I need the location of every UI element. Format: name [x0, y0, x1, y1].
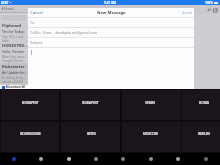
button[interactable]: Mail: [91, 154, 101, 164]
staticText: 9:41 AM: [104, 1, 117, 5]
staticText: An Update fro...: [2, 70, 28, 75]
staticText: To:: [30, 20, 35, 25]
button[interactable]: Compose: [212, 7, 218, 13]
staticText: BITES: [87, 132, 96, 136]
button[interactable]: BERLIN: [176, 131, 220, 137]
button[interactable]: [182, 90, 220, 120]
staticText: In many, brig...: [2, 75, 26, 79]
staticText: Top 10's + ind...: [2, 34, 26, 38]
staticText: Mountain Wi: [5, 85, 26, 89]
button[interactable]: HONESTRO...: [0, 42, 28, 63]
button[interactable]: Search: [173, 154, 183, 164]
button[interactable]: BUDAPEST: [2, 100, 58, 106]
staticText: Subject:: [30, 40, 43, 45]
button[interactable]: MOSCOW: [122, 131, 178, 137]
staticText: BERLIN: [198, 132, 210, 136]
button[interactable]: [61, 122, 120, 152]
staticText: Gmail: [4, 6, 14, 11]
button[interactable]: [1, 90, 59, 120]
button[interactable]: Photos: [36, 154, 46, 164]
staticText: SPAIN: [145, 101, 155, 105]
staticText: People Deem...: [2, 58, 26, 62]
button[interactable]: Flipboard: [0, 22, 28, 42]
staticText: BOURGOGNE: [20, 132, 41, 136]
button[interactable]: Clock: [118, 154, 128, 164]
staticText: ent-ut-u033el: [2, 79, 23, 83]
button[interactable]: ROMA: [176, 100, 220, 106]
button[interactable]: Safari: [9, 154, 19, 164]
button[interactable]: Music: [64, 154, 74, 164]
staticText: BUDAPEST: [82, 101, 99, 105]
button[interactable]: BOURGOGNE: [2, 131, 58, 137]
button[interactable]: BUDAPEST: [62, 100, 118, 106]
button[interactable]: [122, 90, 181, 120]
button[interactable]: [61, 90, 120, 120]
staticText: HONESTRO...: [2, 43, 28, 49]
button[interactable]: [182, 122, 220, 152]
staticText: Flipboard: [2, 23, 22, 29]
button[interactable]: SPAIN: [122, 100, 178, 106]
staticText: BUDAPEST: [22, 101, 39, 105]
button[interactable]: Send: [182, 10, 194, 16]
staticText: 100%: [205, 1, 213, 5]
button[interactable]: Cancel: [28, 10, 44, 16]
other: Back: [1, 7, 4, 10]
button[interactable]: [1, 122, 59, 152]
staticText: Meet the peop...: [2, 54, 28, 58]
staticText: Ten for Today: t...: [2, 29, 28, 34]
staticText: Hello, Partner: [2, 49, 25, 54]
button[interactable]: Videos: [201, 154, 211, 164]
button[interactable]: Settings: [146, 154, 156, 164]
staticText: Cc/Bcc, From: davidgale.mk@gmail.com: [30, 30, 98, 35]
staticText: little: [2, 38, 9, 42]
button[interactable]: [122, 122, 181, 152]
staticText: Kickstarter: [2, 64, 25, 70]
button[interactable]: BITES: [63, 131, 119, 137]
button[interactable]: Kickstarter: [0, 63, 28, 84]
button[interactable]: Reply: [206, 7, 212, 13]
staticText: MOSCOW: [143, 132, 158, 136]
staticText: New Message: [97, 10, 126, 16]
staticText: ROMA: [199, 101, 209, 105]
staticText: AT&T: [1, 1, 9, 5]
